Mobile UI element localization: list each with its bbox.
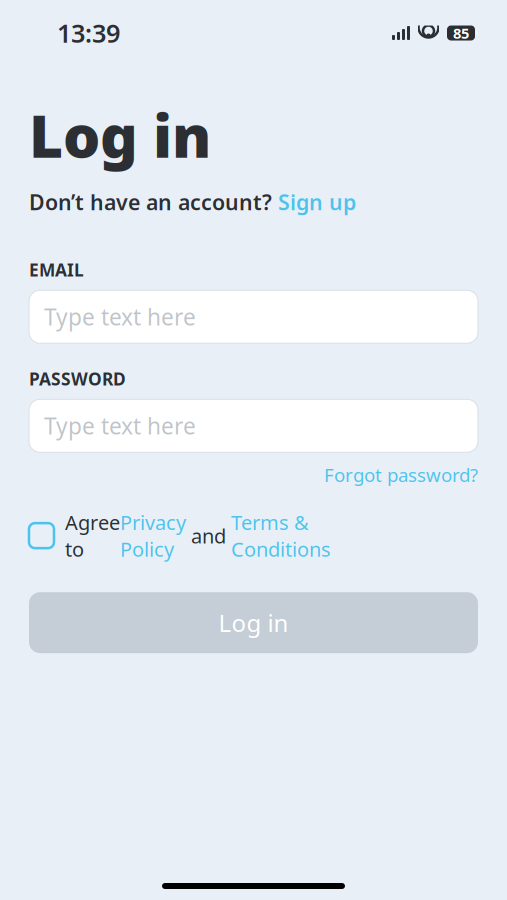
staticText: EMAIL <box>29 258 84 281</box>
staticText: Terms & Conditions <box>231 509 331 562</box>
staticText: Type text here <box>44 302 196 332</box>
staticText: Log in <box>218 607 288 639</box>
button[interactable]: Agree to Privacy Policy and Terms & Cond… <box>29 523 54 548</box>
button[interactable]: Sign up <box>278 188 356 216</box>
staticText: PASSWORD <box>29 367 126 390</box>
button[interactable]: Terms & Conditions <box>231 509 331 562</box>
staticText: Don’t have an account? <box>29 188 272 216</box>
staticText: Forgot password? <box>324 462 478 487</box>
staticText: Sign up <box>278 188 356 216</box>
staticText: Privacy Policy <box>120 509 186 562</box>
button[interactable]: Forgot password? <box>324 462 478 487</box>
button[interactable]: Type text here <box>29 399 478 452</box>
staticText: Type text here <box>44 411 196 441</box>
staticText: Agree to <box>65 509 120 562</box>
staticText: and <box>186 522 231 549</box>
button[interactable]: Privacy Policy <box>120 509 186 562</box>
button[interactable]: Log in <box>29 592 478 653</box>
button[interactable]: Type text here <box>29 290 478 343</box>
staticText: 13:39 <box>57 16 120 50</box>
staticText: Log in <box>29 96 211 174</box>
staticText: 85 <box>453 23 469 43</box>
